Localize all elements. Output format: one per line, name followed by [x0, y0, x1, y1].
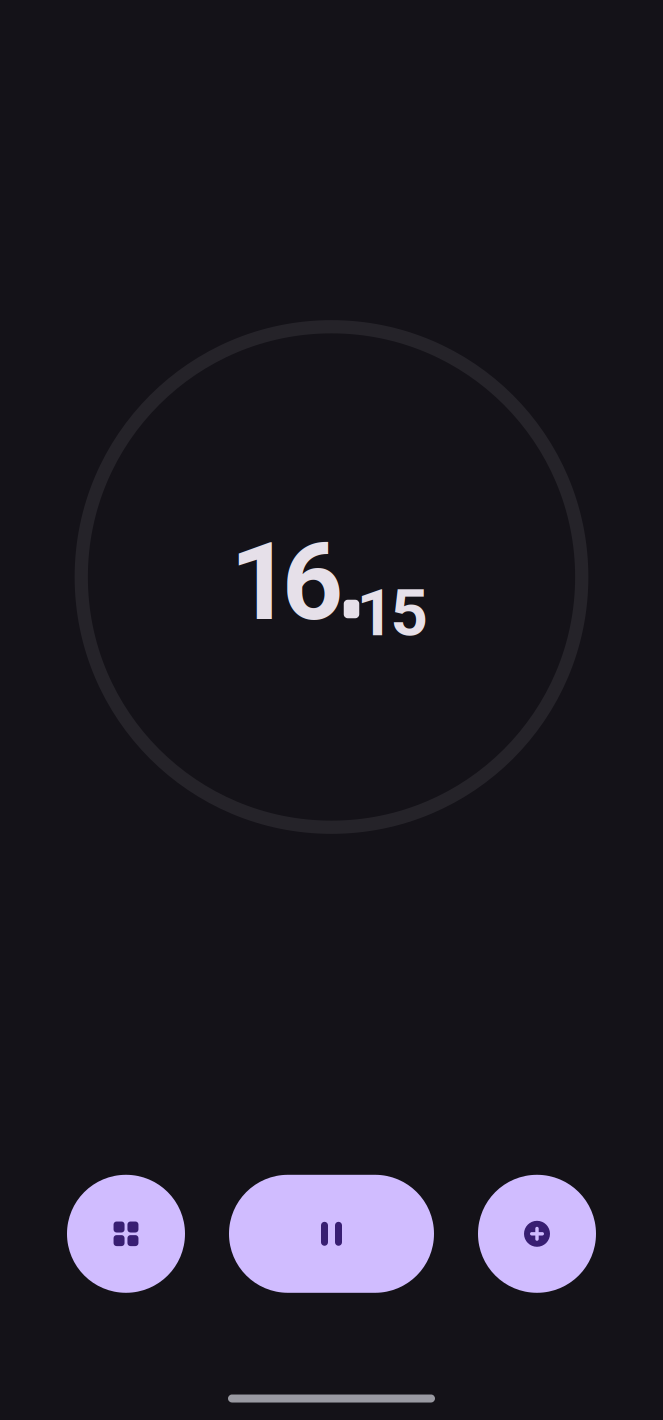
button[interactable]: Add: [478, 1175, 596, 1293]
staticText: 15: [356, 575, 427, 651]
button[interactable]: Laps: [67, 1175, 185, 1293]
button[interactable]: Pause: [229, 1175, 434, 1293]
staticText: 16: [230, 520, 343, 645]
